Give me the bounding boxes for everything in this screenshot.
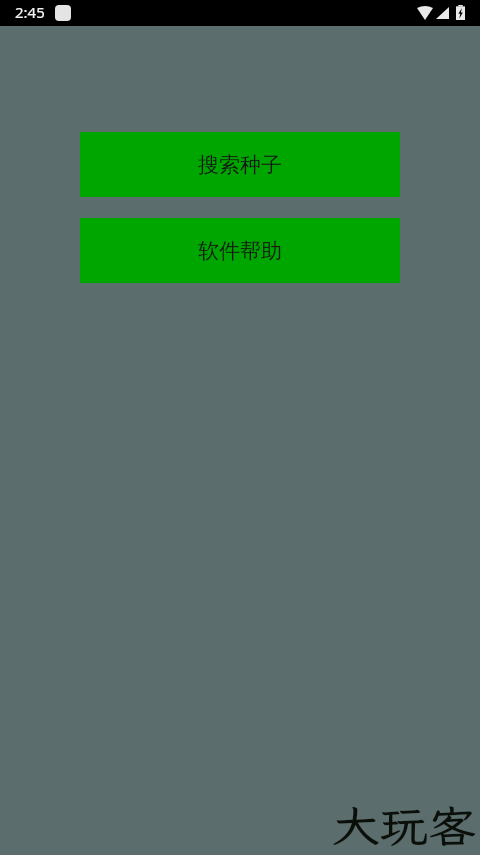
staticText: 2:45	[15, 2, 45, 22]
other: Mobile signal	[436, 7, 449, 19]
button[interactable]: 搜索种子	[80, 132, 400, 197]
other: Notification	[55, 5, 71, 21]
other: Wi-Fi	[417, 6, 433, 20]
other: Battery charging	[456, 5, 465, 20]
staticText: 软件帮助	[198, 238, 282, 264]
staticText: 大玩客	[332, 796, 477, 850]
staticText: 搜索种子	[198, 152, 282, 178]
button[interactable]: 软件帮助	[80, 218, 400, 283]
